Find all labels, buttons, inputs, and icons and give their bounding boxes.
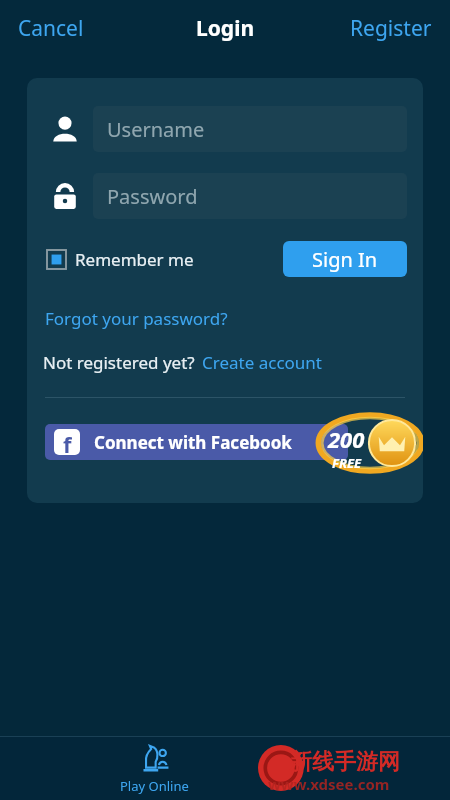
button[interactable]: Forgot your password? bbox=[43, 304, 230, 333]
staticText: Forgot your password? bbox=[45, 307, 228, 330]
button[interactable]: Cancel bbox=[8, 8, 94, 49]
staticText: Password bbox=[107, 183, 198, 210]
button[interactable]: Register bbox=[340, 8, 442, 49]
staticText: 新线手游网 bbox=[290, 748, 400, 776]
staticText: FREE bbox=[332, 454, 362, 472]
staticText: Sign In bbox=[312, 246, 378, 273]
staticText: Cancel bbox=[18, 14, 84, 43]
button[interactable]: Play Online bbox=[110, 738, 199, 799]
staticText: www.xdsee.com bbox=[268, 774, 390, 794]
button[interactable]: Username bbox=[93, 106, 407, 152]
other: Play Online bbox=[139, 742, 171, 774]
staticText: f bbox=[63, 429, 72, 455]
staticText: Username bbox=[107, 116, 205, 143]
button[interactable]: Password bbox=[93, 173, 407, 219]
staticText: Register bbox=[350, 14, 432, 43]
staticText: Remember me bbox=[75, 248, 194, 271]
button[interactable]: Sign In bbox=[283, 241, 407, 277]
staticText: Login bbox=[196, 14, 255, 43]
button[interactable]: Remember me bbox=[45, 244, 196, 275]
staticText: Not registered yet? bbox=[43, 351, 200, 374]
staticText: Connect with Facebook bbox=[94, 431, 292, 454]
button[interactable]: Create account bbox=[200, 348, 324, 377]
staticText: Create account bbox=[202, 351, 322, 374]
staticText: Play Online bbox=[120, 777, 189, 795]
staticText: 200 bbox=[328, 424, 365, 454]
button[interactable]: f bbox=[45, 424, 348, 460]
